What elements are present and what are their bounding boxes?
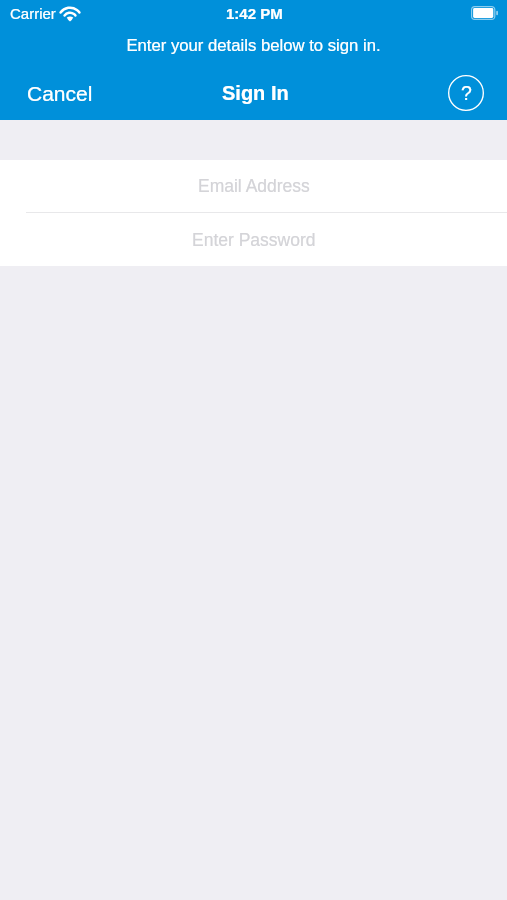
staticText: ? xyxy=(461,82,472,104)
staticText: Sign In xyxy=(222,82,289,104)
staticText: Enter Password xyxy=(192,230,316,250)
button[interactable]: Help xyxy=(446,73,486,113)
staticText: Cancel xyxy=(27,82,93,105)
button[interactable]: Cancel xyxy=(0,72,120,115)
button[interactable]: Email Address xyxy=(0,160,507,212)
staticText: Carrier xyxy=(10,5,56,22)
button[interactable]: Enter Password xyxy=(0,213,507,266)
staticText: 1:42 PM xyxy=(226,5,283,22)
staticText: Email Address xyxy=(198,176,310,196)
staticText: Enter your details below to sign in. xyxy=(126,36,381,55)
